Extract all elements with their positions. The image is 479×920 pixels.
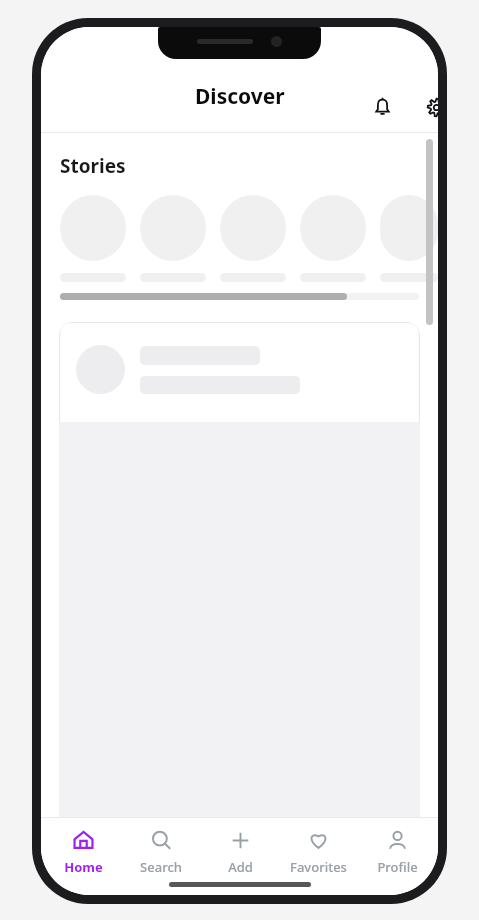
button[interactable]: Favorites <box>281 827 355 878</box>
button[interactable] <box>300 195 366 282</box>
button[interactable]: Home <box>46 827 120 878</box>
button[interactable]: Profile <box>360 827 434 878</box>
button[interactable] <box>60 195 126 282</box>
staticText: Home <box>64 858 103 876</box>
button[interactable] <box>59 322 420 817</box>
staticText: Discover <box>195 82 285 111</box>
button[interactable] <box>220 195 286 282</box>
button[interactable]: Add <box>203 827 277 878</box>
button[interactable]: Search <box>124 827 198 878</box>
button[interactable]: Notifications <box>363 88 401 126</box>
staticText: Favorites <box>290 858 347 876</box>
staticText: Search <box>140 858 182 876</box>
staticText: Stories <box>60 153 126 179</box>
button[interactable]: Settings <box>417 88 438 126</box>
button[interactable] <box>140 195 206 282</box>
staticText: Profile <box>377 858 418 876</box>
button[interactable] <box>380 195 438 282</box>
staticText: Add <box>228 858 253 876</box>
